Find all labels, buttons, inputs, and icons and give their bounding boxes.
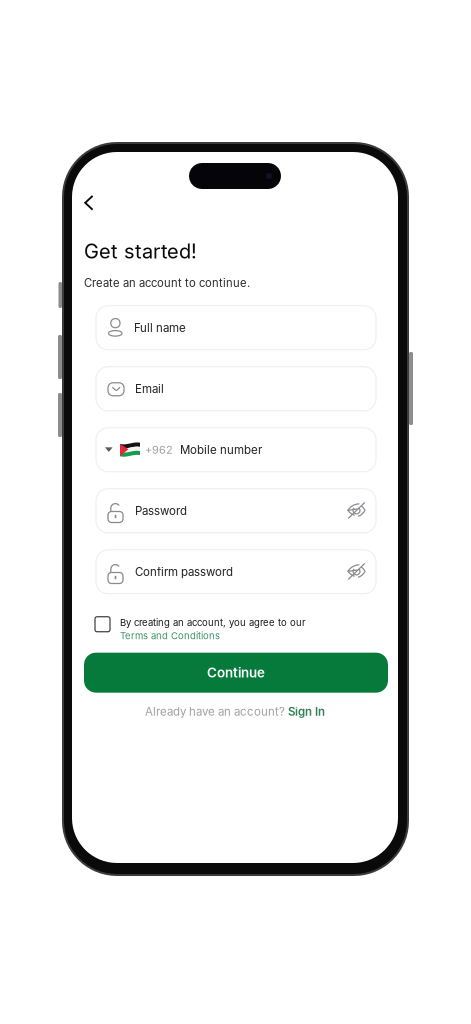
button[interactable]: Confirm password [96,550,376,594]
staticText: Terms and Conditions [120,630,220,642]
button[interactable]: Full name [96,306,376,350]
staticText: Already have an account? [145,705,288,719]
button[interactable]: Password [96,489,376,533]
staticText: By creating an account, you agree to our [120,617,306,628]
staticText: Get started! [84,239,197,263]
button[interactable]: Back [84,191,114,215]
button[interactable]: Sign In [288,705,325,719]
button[interactable]: Continue [84,653,388,693]
button[interactable]: Email [96,367,376,411]
button[interactable]: Terms and Conditions [120,630,220,642]
staticText: Sign In [288,705,325,719]
staticText: Mobile number [180,443,262,457]
staticText: Full name [134,321,186,335]
staticText: +962 [145,443,173,456]
staticText: Create an account to continue. [84,276,250,290]
staticText: Email [135,382,164,396]
staticText: Password [135,504,187,518]
button[interactable]: Agree to terms [95,617,110,632]
staticText: Confirm password [135,565,233,579]
staticText: Continue [207,665,265,681]
button[interactable]: +962 [96,428,376,472]
